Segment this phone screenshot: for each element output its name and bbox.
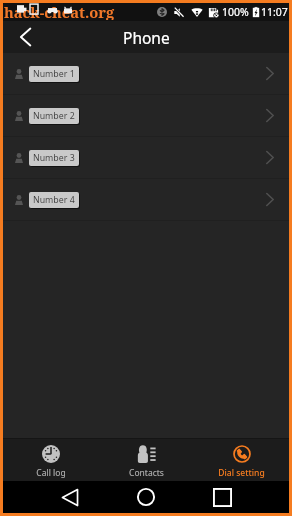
button[interactable]: Number 4 [3, 179, 289, 220]
button[interactable]: Contacts [99, 439, 194, 481]
staticText: Number 2 [33, 110, 75, 122]
staticText: Number 4 [33, 194, 75, 206]
staticText: 100% [222, 5, 249, 19]
button[interactable]: Back [3, 21, 47, 53]
button[interactable]: Number 1 [3, 53, 289, 94]
staticText: Dial setting [218, 467, 265, 479]
button[interactable]: Back [46, 481, 94, 513]
staticText: Call log [36, 467, 66, 479]
button[interactable]: Call log [3, 439, 99, 481]
button[interactable]: Dial setting [194, 439, 289, 481]
staticText: Phone [123, 27, 170, 48]
staticText: Contacts [129, 467, 164, 479]
staticText: Number 1 [33, 68, 75, 80]
button[interactable]: Number 2 [3, 95, 289, 136]
staticText: Number 3 [33, 152, 75, 164]
staticText: hack-cheat.org [4, 2, 115, 20]
button[interactable]: Recents [198, 481, 246, 513]
button[interactable]: Home [122, 481, 170, 513]
staticText: 11:07 [261, 5, 288, 19]
button[interactable]: Number 3 [3, 137, 289, 178]
